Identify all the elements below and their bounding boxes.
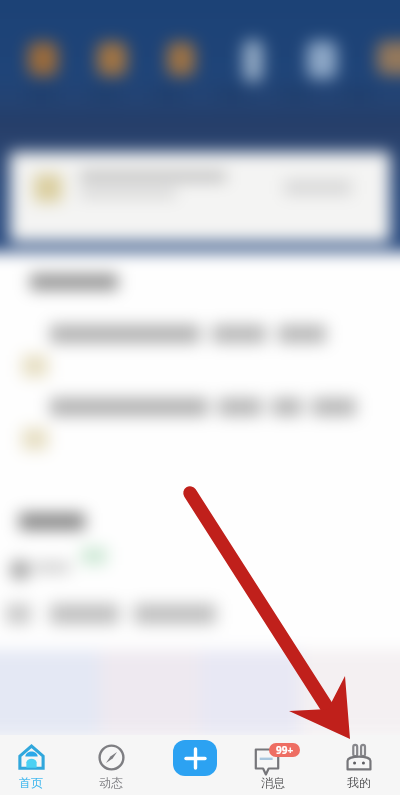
- button[interactable]: Post: [172, 737, 218, 779]
- staticText: 99+: [276, 743, 294, 757]
- staticText: 动态: [99, 775, 123, 790]
- button[interactable]: 首页: [0, 735, 69, 795]
- button[interactable]: 我的: [321, 735, 397, 795]
- button[interactable]: 动态: [73, 735, 149, 795]
- staticText: 我的: [347, 775, 371, 790]
- button[interactable]: 99+: [235, 735, 311, 795]
- staticText: 首页: [19, 775, 43, 790]
- staticText: 消息: [261, 775, 285, 790]
